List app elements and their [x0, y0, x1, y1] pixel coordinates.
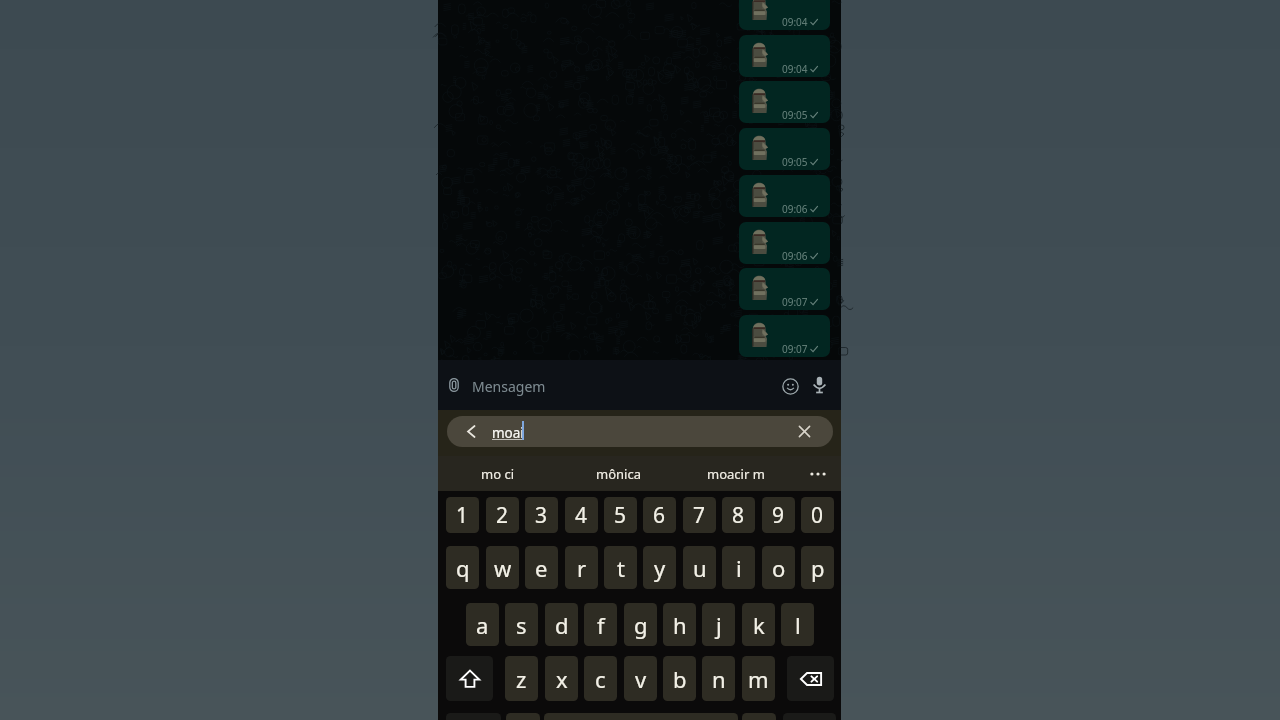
- button[interactable]: 1: [446, 497, 479, 533]
- staticText: l: [795, 610, 801, 640]
- staticText: 09:05: [782, 155, 808, 169]
- staticText: 09:07: [782, 342, 808, 356]
- staticText: y: [654, 553, 666, 583]
- button[interactable]: Clear: [796, 423, 813, 440]
- other: Back: [466, 426, 477, 437]
- button[interactable]: Back: [447, 416, 833, 447]
- button[interactable]: 09:06: [739, 222, 830, 264]
- button[interactable]: 4: [565, 497, 598, 533]
- staticText: v: [635, 664, 647, 694]
- button[interactable]: 5: [604, 497, 637, 533]
- button[interactable]: j: [702, 603, 735, 646]
- staticText: z: [516, 664, 527, 694]
- staticText: f: [597, 610, 605, 640]
- staticText: 8: [732, 501, 745, 530]
- button[interactable]: z: [505, 656, 538, 701]
- staticText: x: [556, 664, 568, 694]
- button[interactable]: n: [702, 656, 735, 701]
- button[interactable]: i: [722, 546, 755, 589]
- button[interactable]: q: [446, 546, 479, 589]
- button[interactable]: 8: [722, 497, 755, 533]
- staticText: a: [476, 610, 489, 640]
- button[interactable]: l: [781, 603, 814, 646]
- staticText: e: [535, 553, 548, 583]
- button[interactable]: 09:04: [739, 35, 830, 77]
- button[interactable]: o: [762, 546, 795, 589]
- staticText: mo ci: [481, 465, 514, 483]
- button[interactable]: w: [486, 546, 519, 589]
- button[interactable]: a: [466, 603, 499, 646]
- staticText: 6: [653, 501, 666, 530]
- staticText: k: [753, 610, 765, 640]
- button[interactable]: x: [545, 656, 578, 701]
- button[interactable]: 09:05: [739, 81, 830, 123]
- staticText: 09:06: [782, 202, 808, 216]
- button[interactable]: h: [663, 603, 696, 646]
- button[interactable]: r: [565, 546, 598, 589]
- button[interactable]: m: [742, 656, 775, 701]
- button[interactable]: 9: [762, 497, 795, 533]
- button[interactable]: Shift: [446, 656, 493, 701]
- button[interactable]: f: [584, 603, 617, 646]
- staticText: 9: [772, 501, 785, 530]
- staticText: moacir m: [707, 465, 765, 483]
- button[interactable]: 09:06: [739, 175, 830, 217]
- button[interactable]: 09:04: [739, 0, 830, 30]
- button[interactable]: Emoji: [782, 378, 799, 395]
- button[interactable]: Voice message: [809, 374, 830, 395]
- staticText: 09:04: [782, 62, 808, 76]
- button[interactable]: mo ci: [438, 456, 556, 491]
- button[interactable]: e: [525, 546, 558, 589]
- button[interactable]: 09:07: [739, 315, 830, 357]
- button[interactable]: 09:05: [739, 128, 830, 170]
- button[interactable]: 7: [683, 497, 716, 533]
- staticText: 09:06: [782, 249, 808, 263]
- staticText: 4: [575, 501, 588, 530]
- button[interactable]: b: [663, 656, 696, 701]
- button[interactable]: p: [801, 546, 834, 589]
- button[interactable]: v: [624, 656, 657, 701]
- staticText: i: [736, 553, 742, 583]
- staticText: 0: [811, 501, 824, 530]
- staticText: j: [716, 610, 722, 640]
- staticText: b: [673, 664, 687, 694]
- staticText: s: [516, 610, 527, 640]
- button[interactable]: t: [604, 546, 637, 589]
- button[interactable]: 2: [486, 497, 519, 533]
- staticText: r: [577, 553, 587, 583]
- button[interactable]: s: [505, 603, 538, 646]
- button[interactable]: Backspace: [787, 656, 834, 701]
- button[interactable]: g: [624, 603, 657, 646]
- button[interactable]: Comma: [506, 713, 540, 720]
- staticText: c: [595, 664, 606, 694]
- button[interactable]: u: [683, 546, 716, 589]
- staticText: q: [456, 553, 470, 583]
- button[interactable]: y: [643, 546, 676, 589]
- staticText: g: [634, 610, 648, 640]
- button[interactable]: Period: [742, 713, 776, 720]
- staticText: mônica: [596, 465, 641, 483]
- staticText: 09:07: [782, 295, 808, 309]
- button[interactable]: Attach: [447, 378, 461, 392]
- staticText: w: [494, 553, 512, 583]
- button[interactable]: moacir m: [677, 456, 795, 491]
- button[interactable]: More suggestions: [798, 456, 838, 491]
- button[interactable]: 3: [525, 497, 558, 533]
- button[interactable]: k: [742, 603, 775, 646]
- staticText: u: [693, 553, 707, 583]
- button[interactable]: 0: [801, 497, 834, 533]
- staticText: 3: [535, 501, 548, 530]
- button[interactable]: mônica: [559, 456, 677, 491]
- button[interactable]: c: [584, 656, 617, 701]
- button[interactable]: 09:07: [739, 268, 830, 310]
- staticText: moai: [492, 424, 524, 442]
- button[interactable]: 6: [643, 497, 676, 533]
- button[interactable]: d: [545, 603, 578, 646]
- staticText: h: [673, 610, 687, 640]
- staticText: 09:05: [782, 108, 808, 122]
- staticText: o: [772, 553, 786, 583]
- staticText: m: [748, 664, 769, 694]
